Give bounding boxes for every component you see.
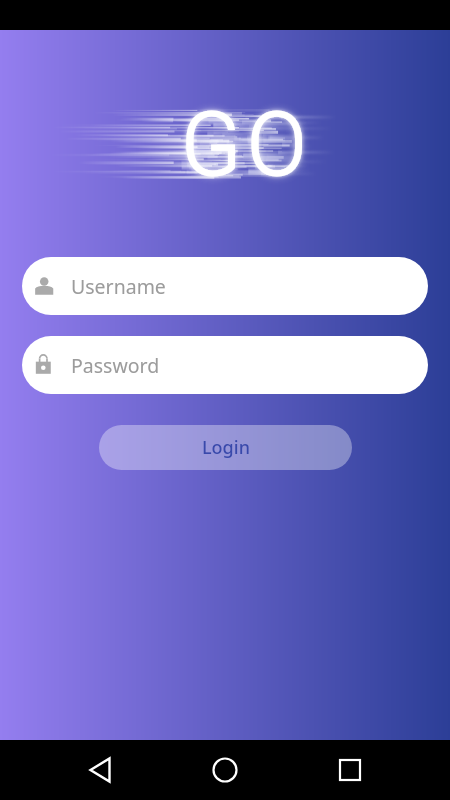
- staticText: Username: [71, 273, 166, 300]
- button[interactable]: Username: [22, 257, 428, 315]
- button[interactable]: Home: [195, 740, 255, 800]
- staticText: Password: [71, 352, 160, 379]
- button[interactable]: Back: [70, 740, 130, 800]
- staticText: Login: [202, 435, 250, 460]
- button[interactable]: Login: [99, 425, 352, 470]
- button[interactable]: Recent apps: [320, 740, 380, 800]
- button[interactable]: Password: [22, 336, 428, 394]
